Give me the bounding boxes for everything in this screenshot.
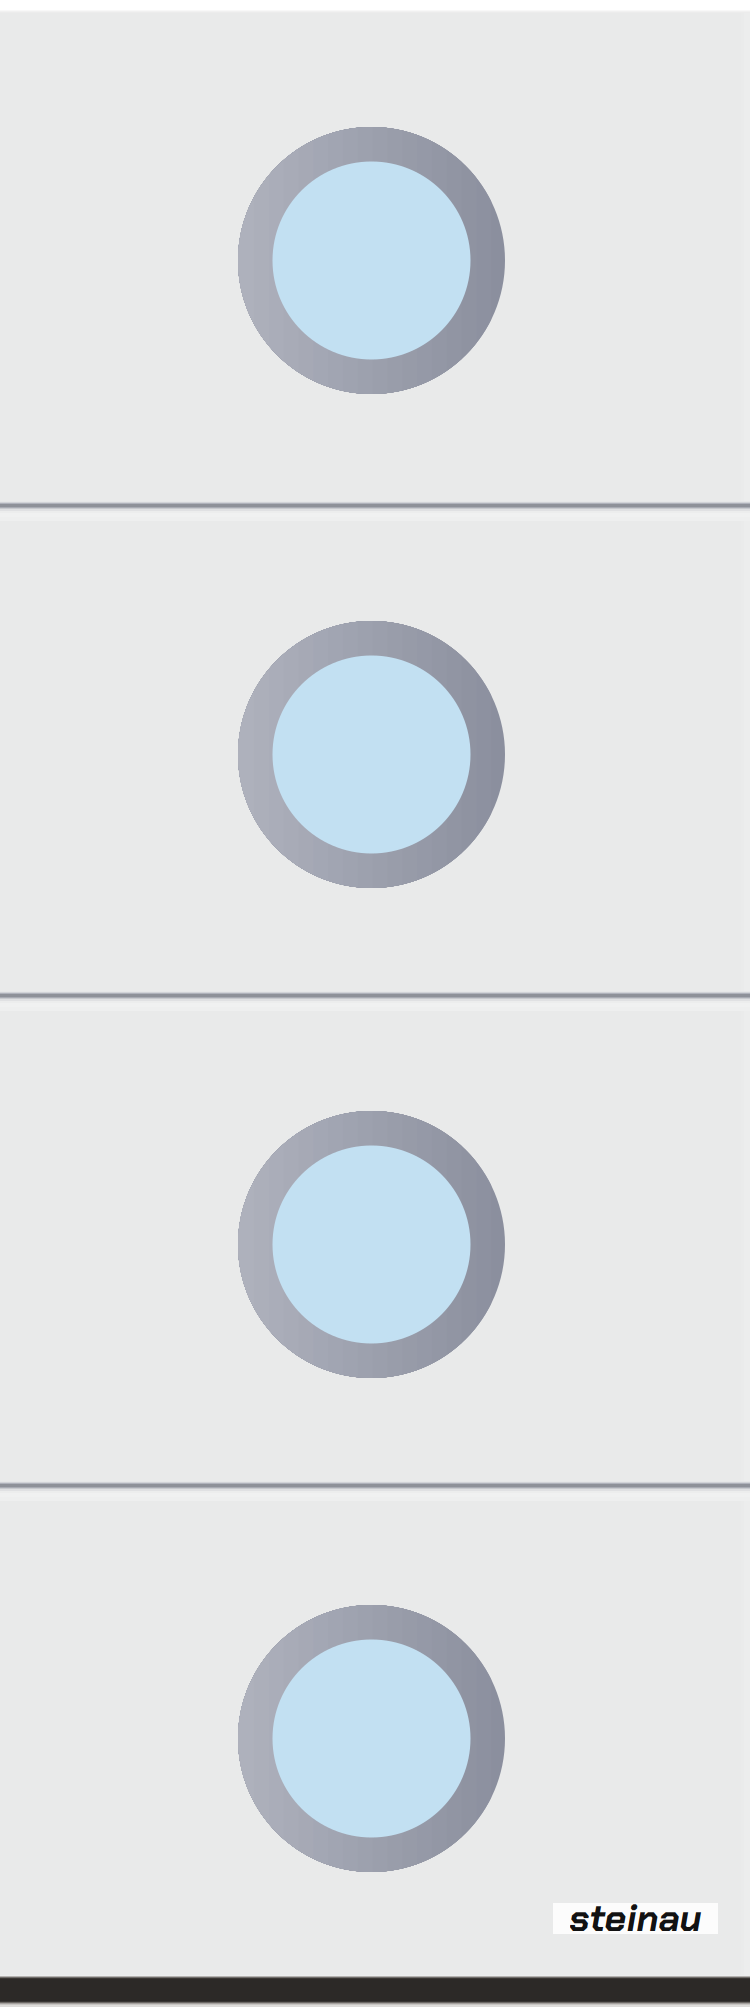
button[interactable]: steinau <box>553 1903 718 1934</box>
staticText: steinau <box>569 1894 701 1943</box>
button[interactable]: Door leaf with porthole <box>0 13 750 501</box>
button[interactable]: Door leaf with porthole <box>0 1501 750 1975</box>
button[interactable]: Door leaf with porthole <box>0 1011 750 1481</box>
button[interactable]: Door leaf with porthole <box>0 521 750 991</box>
